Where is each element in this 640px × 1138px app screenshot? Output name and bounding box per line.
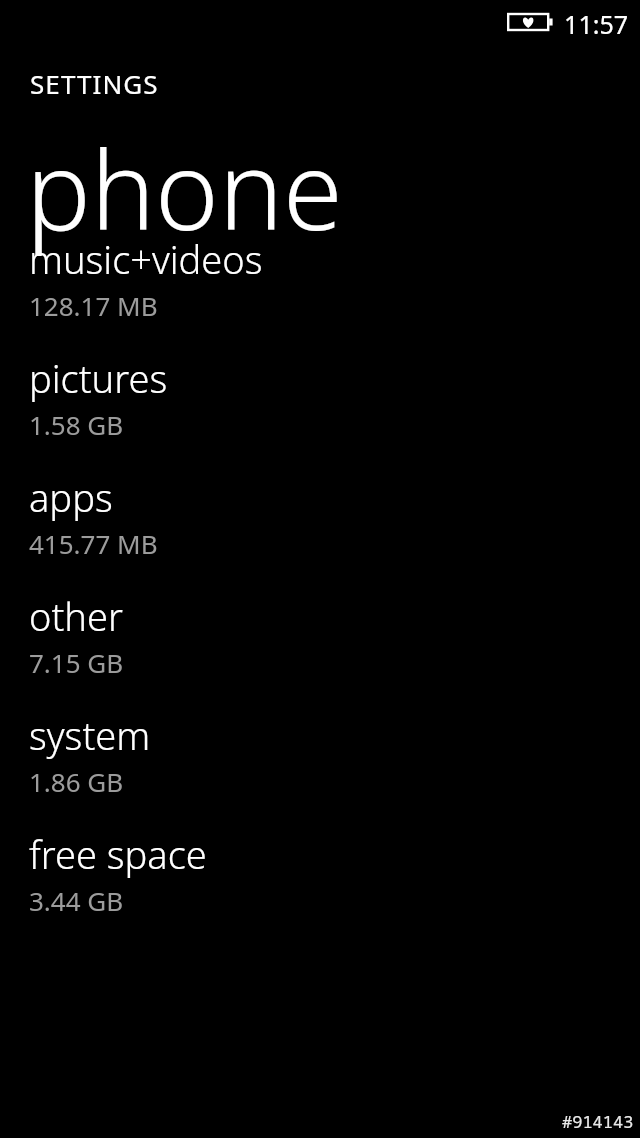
staticText: phone xyxy=(26,115,343,262)
staticText: system xyxy=(29,709,151,761)
button[interactable]: pictures xyxy=(0,352,640,471)
staticText: pictures xyxy=(29,352,168,404)
button[interactable]: free space xyxy=(0,828,640,947)
staticText: 3.44 GB xyxy=(29,883,124,918)
staticText: apps xyxy=(29,471,113,523)
staticText: 128.17 MB xyxy=(29,288,158,323)
button[interactable]: Battery saver on xyxy=(507,11,553,33)
button[interactable]: music+videos xyxy=(0,233,640,352)
staticText: 1.86 GB xyxy=(29,764,124,799)
staticText: #914143 xyxy=(562,1110,634,1133)
staticText: 7.15 GB xyxy=(29,645,124,680)
staticText: 11:57 xyxy=(564,7,628,41)
button[interactable]: system xyxy=(0,709,640,828)
staticText: 1.58 GB xyxy=(29,407,124,442)
button[interactable]: other xyxy=(0,590,640,709)
staticText: other xyxy=(29,590,123,642)
staticText: music+videos xyxy=(29,233,263,285)
staticText: SETTINGS xyxy=(30,66,159,101)
staticText: free space xyxy=(29,828,207,880)
staticText: 415.77 MB xyxy=(29,526,158,561)
button[interactable]: apps xyxy=(0,471,640,590)
